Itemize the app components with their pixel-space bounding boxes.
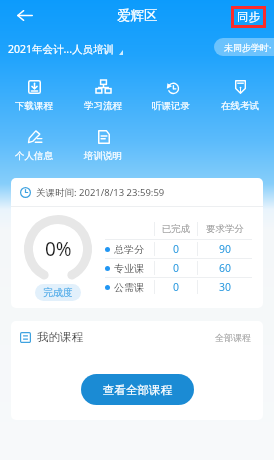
staticText: 公需课	[114, 281, 144, 294]
staticText: 0	[155, 261, 197, 275]
button[interactable]: Class records	[137, 64, 205, 116]
staticText: 下载课程	[15, 100, 53, 112]
staticText: 0	[155, 242, 197, 256]
staticText: 已完成	[155, 223, 197, 235]
staticText: 0	[155, 280, 197, 294]
button[interactable]: Online exam	[206, 64, 274, 116]
staticText: 查看全部课程	[103, 383, 172, 397]
staticText: 总学分	[114, 243, 144, 256]
staticText: 要求学分	[198, 223, 252, 235]
staticText: 未同步学时·	[224, 41, 272, 53]
staticText: 完成度	[43, 286, 73, 299]
staticText: 2021年会计...人员培训	[8, 42, 114, 56]
button[interactable]: 2021年会计...人员培训	[8, 42, 123, 56]
staticText: 学习流程	[84, 100, 122, 112]
staticText: 60	[198, 261, 252, 275]
button[interactable]: 全部课程	[212, 329, 254, 346]
button[interactable]: Training notes	[69, 114, 137, 166]
button[interactable]: 查看全部课程	[81, 374, 194, 405]
staticText: 培训说明	[84, 150, 122, 162]
staticText: 爱辉区	[117, 7, 158, 24]
button[interactable]: Download courses	[0, 64, 68, 116]
staticText: 我的课程	[37, 330, 83, 344]
staticText: 关课时间: 2021/8/13 23:59:59	[36, 186, 165, 199]
staticText: 30	[198, 280, 252, 294]
button[interactable]: Back	[8, 0, 42, 30]
staticText: 全部课程	[215, 332, 251, 343]
staticText: 在线考试	[221, 100, 259, 112]
staticText: 90	[198, 242, 252, 256]
staticText: 0%	[45, 236, 72, 262]
staticText: 专业课	[114, 262, 144, 275]
staticText: 听课记录	[152, 100, 190, 112]
button[interactable]: Personal info	[0, 114, 68, 166]
button[interactable]: 同步	[237, 10, 260, 24]
button[interactable]: 未同步学时·	[224, 41, 272, 53]
staticText: 同步	[237, 10, 260, 24]
staticText: 个人信息	[15, 150, 53, 162]
button[interactable]: Study flow	[69, 64, 137, 116]
